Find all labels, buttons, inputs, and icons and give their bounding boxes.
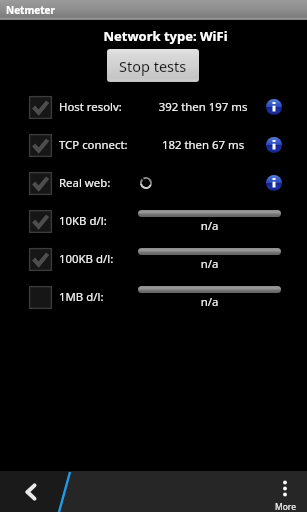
staticText: More (275, 501, 296, 512)
staticText: TCP connect: (59, 137, 128, 153)
button[interactable]: More (259, 471, 307, 512)
button[interactable]: Info (262, 133, 286, 157)
button[interactable]: TCP connect: (0, 126, 307, 164)
staticText: 1MB d/l: (59, 289, 104, 305)
staticText: Netmeter (6, 3, 55, 17)
staticText: Real web: (59, 175, 111, 191)
button[interactable]: Real web: (0, 164, 307, 202)
button[interactable]: Info (262, 171, 286, 195)
staticText: 182 then 67 ms (145, 137, 261, 153)
button[interactable]: Info (262, 95, 286, 119)
staticText: 100KB d/l: (59, 251, 114, 267)
staticText: 392 then 197 ms (145, 99, 261, 115)
button[interactable]: 1MB d/l: (0, 278, 307, 316)
staticText: n/a (138, 256, 281, 272)
button[interactable]: 100KB d/l: (0, 240, 307, 278)
button[interactable]: Host resolv: (0, 88, 307, 126)
staticText: Stop tests (119, 56, 187, 76)
button[interactable]: 10KB d/l: (0, 202, 307, 240)
staticText: Host resolv: (59, 99, 122, 115)
staticText: 10KB d/l: (59, 213, 107, 229)
staticText: Network type: WiFi (12, 27, 307, 45)
staticText: n/a (138, 294, 281, 310)
staticText: n/a (138, 218, 281, 234)
button[interactable]: Stop tests (107, 49, 199, 82)
button[interactable]: Back (0, 471, 62, 512)
